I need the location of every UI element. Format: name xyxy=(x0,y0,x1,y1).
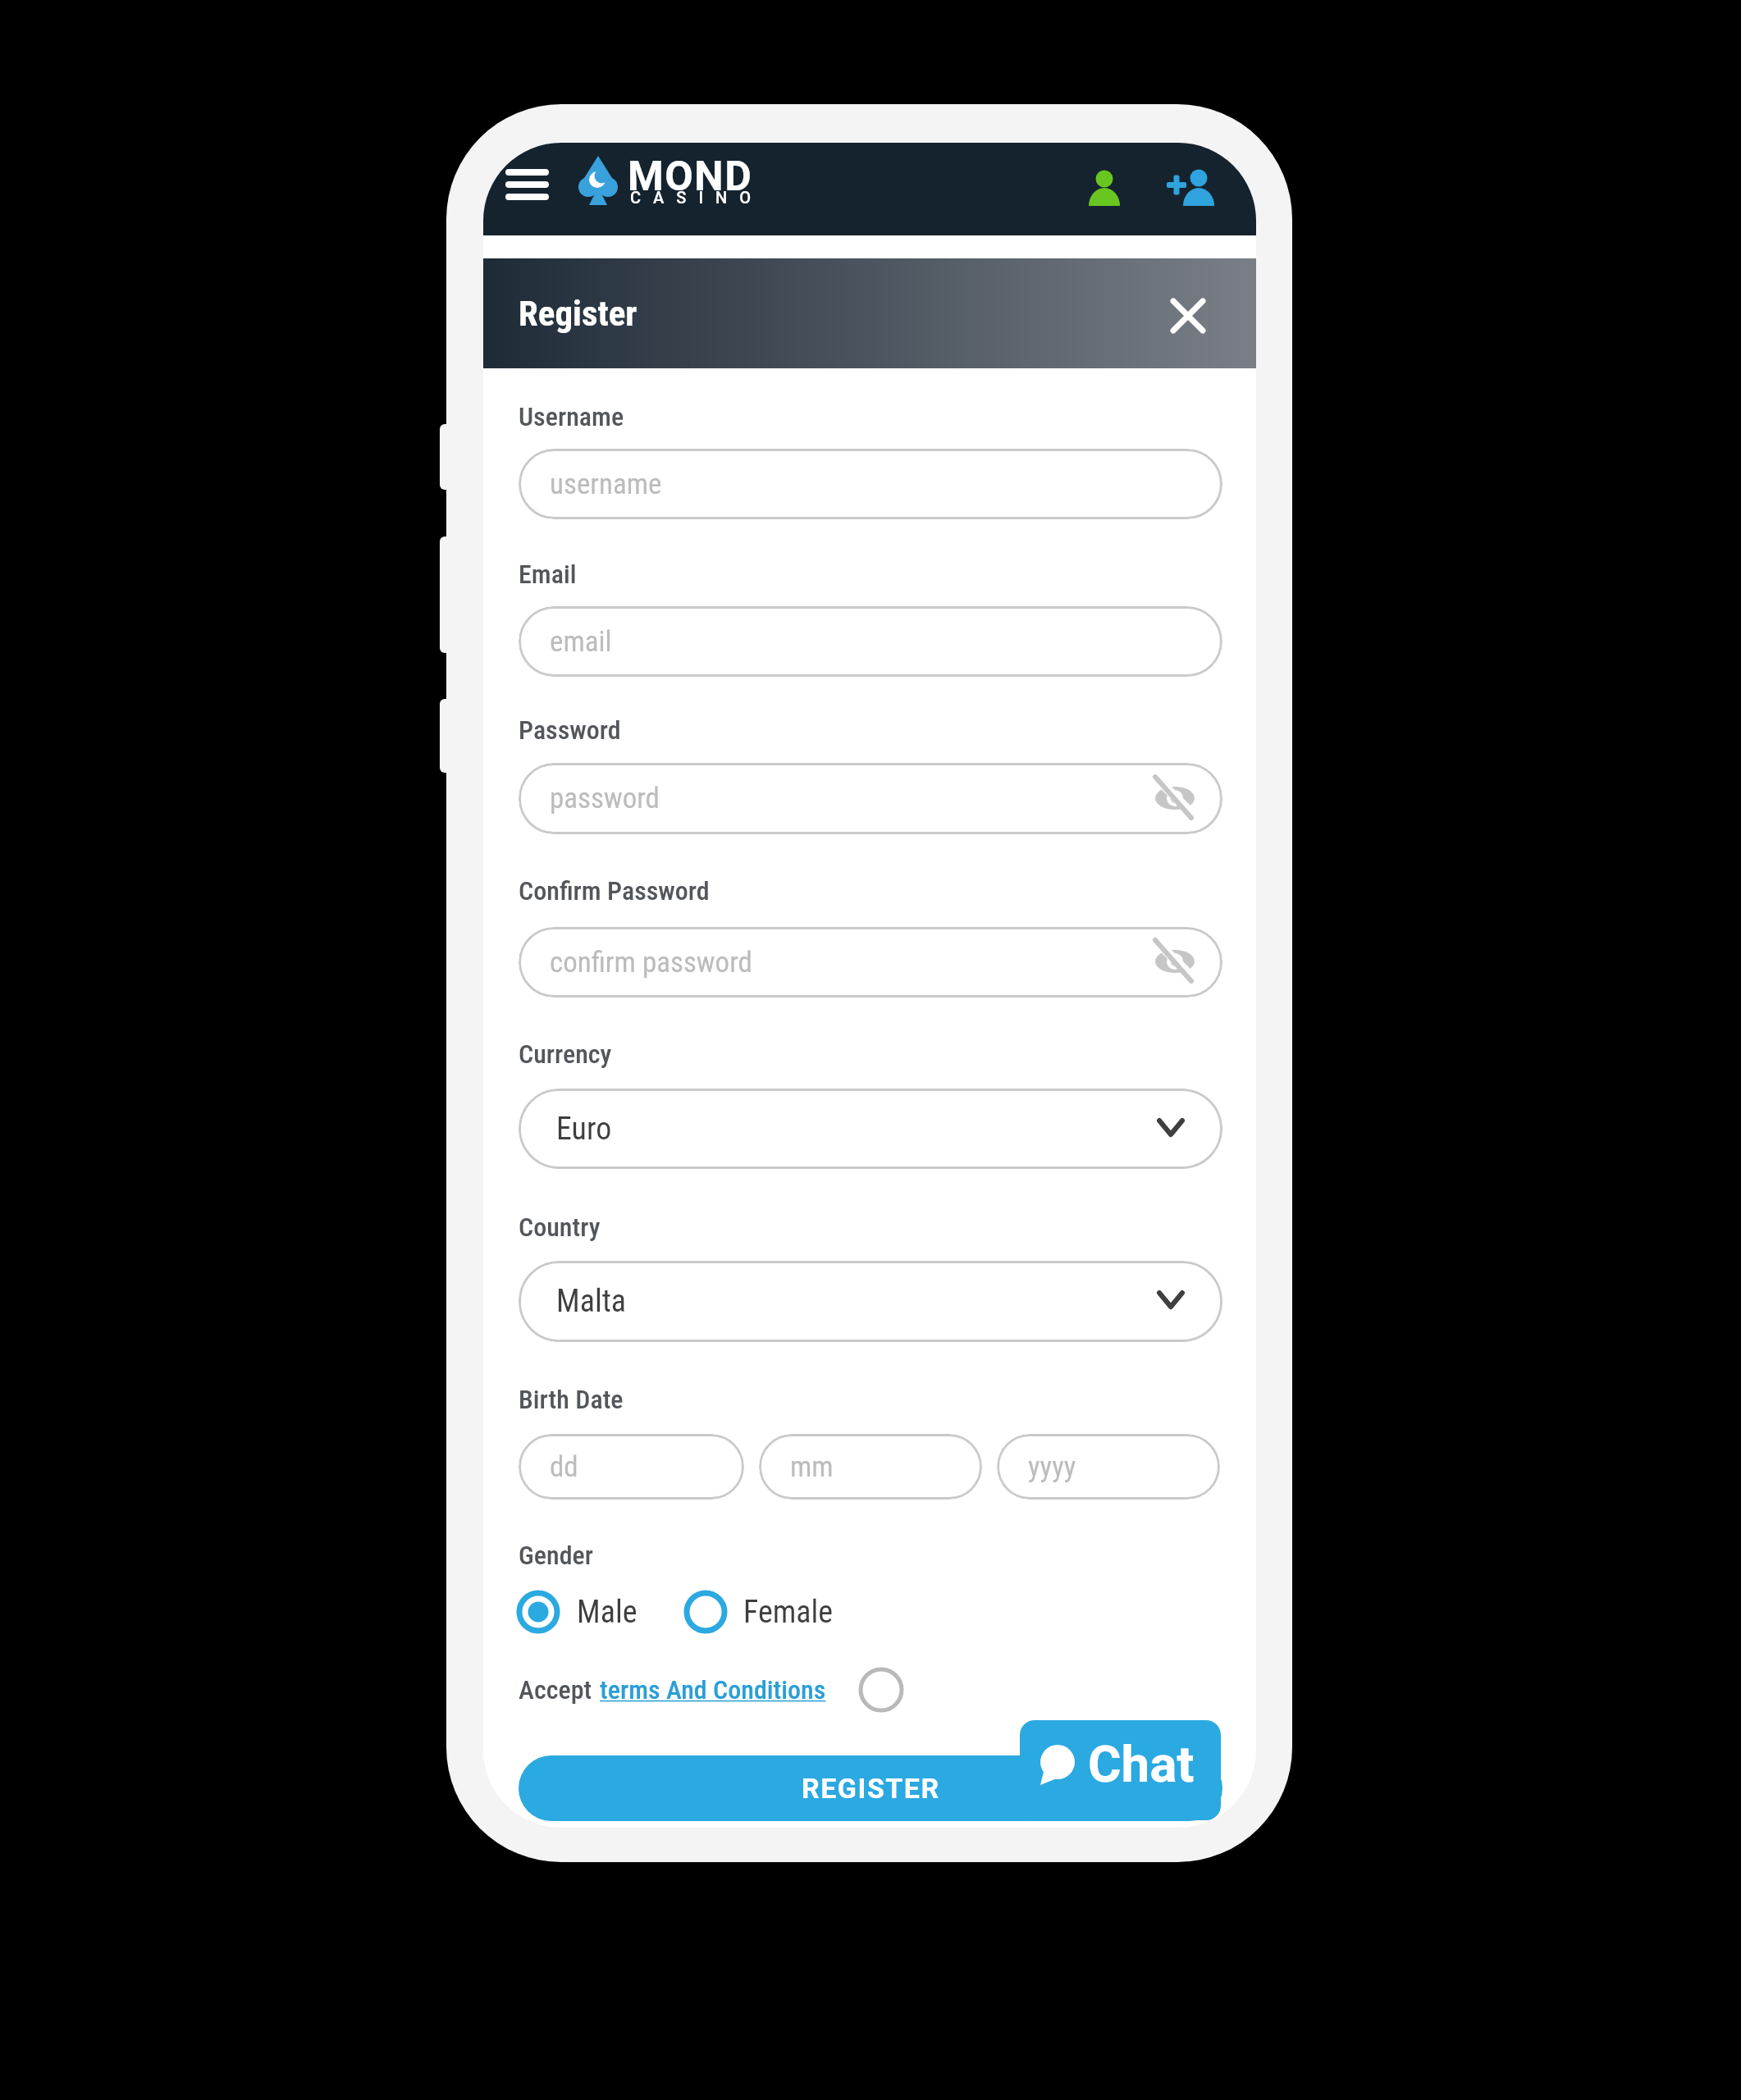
button[interactable] xyxy=(1020,1720,1221,1820)
staticText: CASINO xyxy=(630,188,764,207)
button[interactable]: email xyxy=(519,606,1222,677)
staticText: confirm password xyxy=(550,946,752,979)
button[interactable]: Malta xyxy=(519,1261,1222,1342)
staticText: dd xyxy=(550,1450,578,1484)
button[interactable]: mm xyxy=(759,1434,982,1500)
button[interactable]: dd xyxy=(519,1434,744,1500)
button[interactable]: confirm password xyxy=(519,927,1222,997)
button[interactable] xyxy=(1160,164,1221,210)
staticText: Male xyxy=(577,1594,637,1631)
button[interactable] xyxy=(681,1587,861,1637)
staticText: Accept xyxy=(519,1674,592,1705)
staticText: yyyy xyxy=(1028,1450,1076,1484)
staticText: Username xyxy=(519,401,624,432)
button[interactable] xyxy=(500,162,555,207)
button[interactable] xyxy=(1155,283,1221,349)
button[interactable] xyxy=(1081,164,1127,210)
staticText: Confirm Password xyxy=(519,875,710,906)
staticText: Gender xyxy=(519,1540,593,1571)
staticText: Password xyxy=(519,714,621,746)
button[interactable]: password xyxy=(519,763,1222,834)
staticText: Euro xyxy=(556,1111,612,1148)
staticText: terms And Conditions xyxy=(600,1674,826,1705)
staticText: Country xyxy=(519,1212,601,1243)
staticText: Currency xyxy=(519,1039,612,1070)
button[interactable]: Euro xyxy=(519,1089,1222,1169)
staticText: username xyxy=(550,468,662,501)
staticText: mm xyxy=(790,1450,834,1484)
staticText: REGISTER xyxy=(802,1772,940,1805)
staticText: MOND xyxy=(628,153,753,190)
button[interactable]: yyyy xyxy=(997,1434,1220,1500)
button[interactable] xyxy=(855,1664,907,1716)
button[interactable]: username xyxy=(519,449,1222,519)
staticText: Chat xyxy=(1088,1734,1195,1794)
button[interactable]: REGISTER xyxy=(519,1755,1222,1821)
staticText: password xyxy=(550,782,660,815)
staticText: Birth Date xyxy=(519,1384,624,1415)
staticText: Email xyxy=(519,559,577,590)
staticText: Register xyxy=(519,293,637,334)
staticText: Malta xyxy=(556,1283,627,1320)
staticText: Female xyxy=(743,1594,834,1631)
staticText: email xyxy=(550,625,612,659)
button[interactable] xyxy=(514,1587,645,1637)
button[interactable]: terms And Conditions xyxy=(600,1670,912,1710)
